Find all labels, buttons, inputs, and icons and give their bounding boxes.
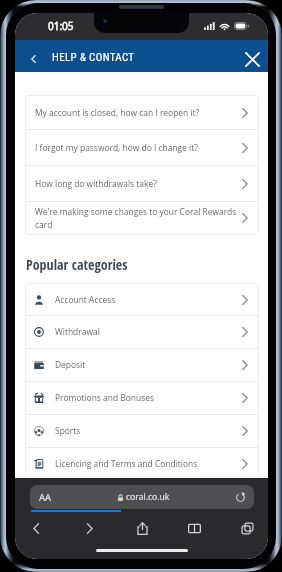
button[interactable]: Back [24, 516, 48, 540]
button[interactable]: My account is closed, how can I reopen i… [26, 96, 258, 129]
staticText: How long do withdrawals take? [35, 178, 239, 190]
staticText: 01:05 [48, 19, 74, 33]
staticText: Account Access [55, 294, 242, 306]
staticText: Sports [55, 425, 242, 437]
button[interactable]: Close [240, 47, 264, 71]
button[interactable]: How long do withdrawals take? [26, 166, 258, 201]
button[interactable]: Withdrawal [26, 316, 258, 348]
staticText: coral.co.uk [126, 491, 170, 503]
button[interactable]: Reload [232, 489, 248, 505]
button[interactable]: AA [30, 485, 254, 509]
button[interactable]: Deposit [26, 349, 258, 381]
button[interactable]: Forward [77, 516, 101, 540]
staticText: AA [39, 491, 52, 504]
button[interactable]: I forgot my password, how do I change it… [26, 130, 258, 165]
staticText: My account is closed, how can I reopen i… [35, 107, 239, 119]
staticText: Promotions and Bonuses [55, 392, 242, 404]
staticText: HELP & CONTACT [52, 51, 135, 64]
staticText: Popular categories [26, 255, 128, 274]
button[interactable]: Back [22, 45, 44, 67]
staticText: Deposit [55, 359, 242, 371]
button[interactable]: Account Access [26, 284, 258, 315]
staticText: I forgot my password, how do I change it… [35, 142, 239, 154]
button[interactable]: Promotions and Bonuses [26, 382, 258, 414]
button[interactable]: Sports [26, 415, 258, 447]
button[interactable]: We're making some changes to your Coral … [26, 202, 258, 234]
button[interactable]: Share [130, 516, 154, 540]
button[interactable]: Licencing and Terms and Conditions [26, 448, 258, 480]
staticText: We're making some changes to your Coral … [35, 206, 239, 231]
staticText: Licencing and Terms and Conditions [55, 458, 242, 470]
button[interactable]: Tabs [235, 516, 259, 540]
staticText: Withdrawal [55, 326, 242, 338]
button[interactable]: Bookmarks [182, 516, 206, 540]
